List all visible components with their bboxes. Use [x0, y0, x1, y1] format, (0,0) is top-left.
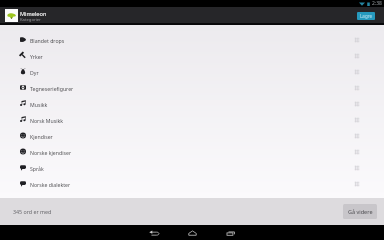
staticText: Blandet drops	[30, 37, 65, 44]
button[interactable]: Språk	[0, 160, 384, 176]
button[interactable]: Home	[186, 225, 198, 240]
staticText: Norske dialekter	[30, 181, 71, 188]
staticText: Lagre	[360, 13, 372, 19]
staticText: Kjendiser	[30, 133, 53, 140]
button[interactable]: Dyr	[0, 64, 384, 80]
staticText: Norske kjendiser	[30, 149, 72, 156]
button[interactable]: Blandet drops	[0, 32, 384, 48]
staticText: 345 ord er med	[13, 208, 52, 215]
staticText: Mimeleon	[20, 10, 47, 18]
button[interactable]: Lagre	[357, 12, 375, 20]
button[interactable]: Yrker	[0, 48, 384, 64]
staticText: Musikk	[30, 101, 48, 108]
staticText: Tegneseriefigurer	[30, 85, 74, 92]
button[interactable]: Norsk Musikk	[0, 112, 384, 128]
button[interactable]: Norske dialekter	[0, 176, 384, 192]
staticText: Norsk Musikk	[30, 117, 64, 124]
staticText: 2:38	[372, 0, 382, 7]
button[interactable]: Norske kjendiser	[0, 144, 384, 160]
button[interactable]: Gå videre	[343, 204, 377, 219]
staticText: Kategorier	[20, 17, 41, 23]
button[interactable]: Musikk	[0, 96, 384, 112]
staticText: Språk	[30, 165, 44, 172]
button[interactable]: Recent apps	[224, 225, 236, 240]
staticText: Gå videre	[348, 208, 373, 215]
button[interactable]: Kjendiser	[0, 128, 384, 144]
button[interactable]: Back	[148, 225, 160, 240]
button[interactable]: Tegneseriefigurer	[0, 80, 384, 96]
staticText: Yrker	[30, 53, 43, 60]
staticText: Dyr	[30, 69, 39, 76]
